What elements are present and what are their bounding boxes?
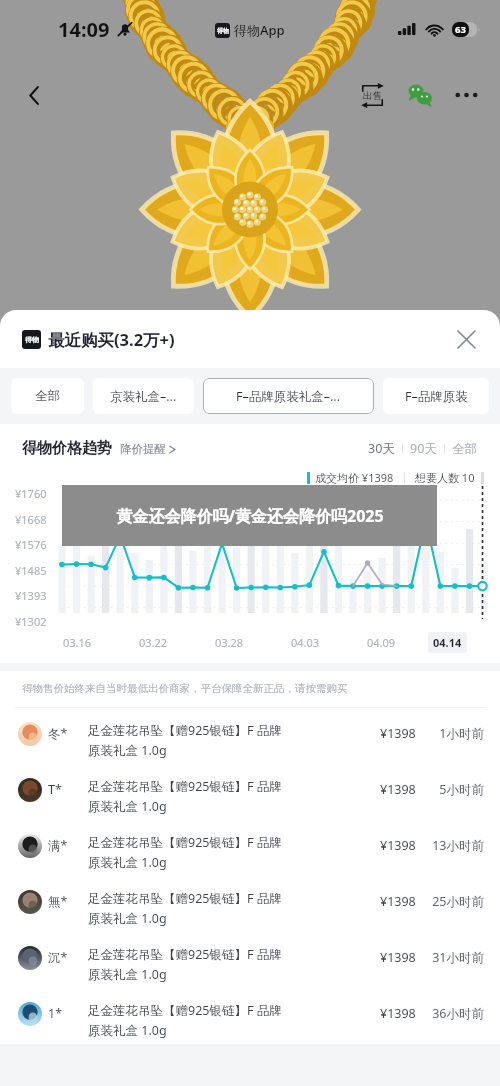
- staticText: T*: [48, 781, 62, 798]
- button[interactable]: T*: [0, 764, 500, 820]
- staticText: 31小时前: [430, 949, 484, 966]
- staticText: 03.22: [139, 635, 168, 650]
- staticText: ¥1398: [380, 781, 416, 798]
- button[interactable]: 冬*: [0, 708, 500, 764]
- button[interactable]: F–品牌原装: [383, 378, 489, 414]
- staticText: 5小时前: [430, 781, 484, 798]
- staticText: 足金莲花吊坠【赠925银链】F 品牌原装礼盒 1.0g: [88, 946, 284, 983]
- staticText: 04.03: [291, 635, 320, 650]
- staticText: 沉*: [48, 949, 68, 966]
- staticText: 最近购买(3.2万+): [48, 328, 175, 351]
- staticText: 黄金还会降价吗/黄金还会降价吗2025: [116, 505, 384, 527]
- staticText: ¥1398: [380, 1005, 416, 1022]
- staticText: 得物价格趋势: [22, 439, 112, 458]
- staticText: 無*: [48, 893, 68, 910]
- staticText: 想要人数 10: [415, 470, 475, 485]
- staticText: 足金莲花吊坠【赠925银链】F 品牌原装礼盒 1.0g: [88, 1002, 284, 1039]
- staticText: 14:09: [58, 16, 110, 43]
- staticText: 03.16: [63, 635, 92, 650]
- staticText: 04.14: [433, 635, 462, 650]
- staticText: 30天: [368, 440, 395, 457]
- staticText: 1小时前: [430, 725, 484, 742]
- staticText: ¥1485: [15, 563, 47, 578]
- staticText: 足金莲花吊坠【赠925银链】F 品牌原装礼盒 1.0g: [88, 834, 284, 871]
- staticText: ¥1302: [15, 614, 47, 629]
- staticText: ¥1668: [15, 512, 47, 527]
- staticText: 36小时前: [430, 1005, 484, 1022]
- button[interactable]: F–品牌原装礼盒–...: [203, 378, 374, 414]
- staticText: 得物售价始终来自当时最低出价商家，平台保障全新正品，请按需购买: [22, 682, 348, 695]
- button[interactable]: 京装礼盒–...: [93, 378, 194, 414]
- button[interactable]: 無*: [0, 876, 500, 932]
- button[interactable]: 全部: [11, 378, 84, 414]
- button[interactable]: Close: [450, 323, 482, 355]
- staticText: ¥1398: [380, 725, 416, 742]
- button[interactable]: Share to WeChat: [402, 77, 438, 113]
- staticText: 满*: [48, 837, 68, 854]
- staticText: 足金莲花吊坠【赠925银链】F 品牌原装礼盒 1.0g: [88, 890, 284, 927]
- staticText: ¥1398: [380, 837, 416, 854]
- staticText: F–品牌原装礼盒–...: [236, 388, 341, 405]
- staticText: 得物App: [234, 21, 285, 39]
- staticText: 足金莲花吊坠【赠925银链】F 品牌原装礼盒 1.0g: [88, 778, 284, 815]
- staticText: ¥1576: [15, 537, 47, 552]
- staticText: 得物: [217, 27, 229, 35]
- staticText: ¥1393: [15, 588, 47, 603]
- staticText: 25小时前: [430, 893, 484, 910]
- staticText: 63: [455, 23, 466, 36]
- staticText: 降价提醒: [120, 442, 166, 456]
- staticText: ¥1760: [15, 486, 47, 501]
- button[interactable]: 降价提醒: [120, 442, 176, 456]
- button[interactable]: Sell: [354, 77, 390, 113]
- staticText: 1*: [48, 1005, 63, 1022]
- staticText: ¥1398: [380, 949, 416, 966]
- button[interactable]: 90天: [403, 437, 444, 460]
- button[interactable]: Back: [16, 77, 52, 113]
- button[interactable]: More options: [448, 77, 484, 113]
- staticText: 13小时前: [430, 837, 484, 854]
- staticText: F–品牌原装: [405, 388, 468, 405]
- staticText: 京装礼盒–...: [110, 388, 177, 405]
- staticText: 出售: [363, 90, 382, 102]
- button[interactable]: 30天: [361, 437, 402, 460]
- staticText: 03.28: [215, 635, 244, 650]
- staticText: 90天: [410, 440, 437, 457]
- button[interactable]: 1*: [0, 988, 500, 1044]
- staticText: ¥1398: [380, 893, 416, 910]
- staticText: 04.09: [367, 635, 396, 650]
- staticText: 全部: [35, 388, 60, 404]
- staticText: 冬*: [48, 725, 68, 742]
- staticText: 全部: [452, 441, 477, 457]
- staticText: 得物: [25, 335, 39, 344]
- button[interactable]: 沉*: [0, 932, 500, 988]
- staticText: 足金莲花吊坠【赠925银链】F 品牌原装礼盒 1.0g: [88, 722, 284, 759]
- staticText: 成交均价 ¥1398: [315, 470, 394, 485]
- button[interactable]: 满*: [0, 820, 500, 876]
- button[interactable]: 全部: [445, 438, 484, 460]
